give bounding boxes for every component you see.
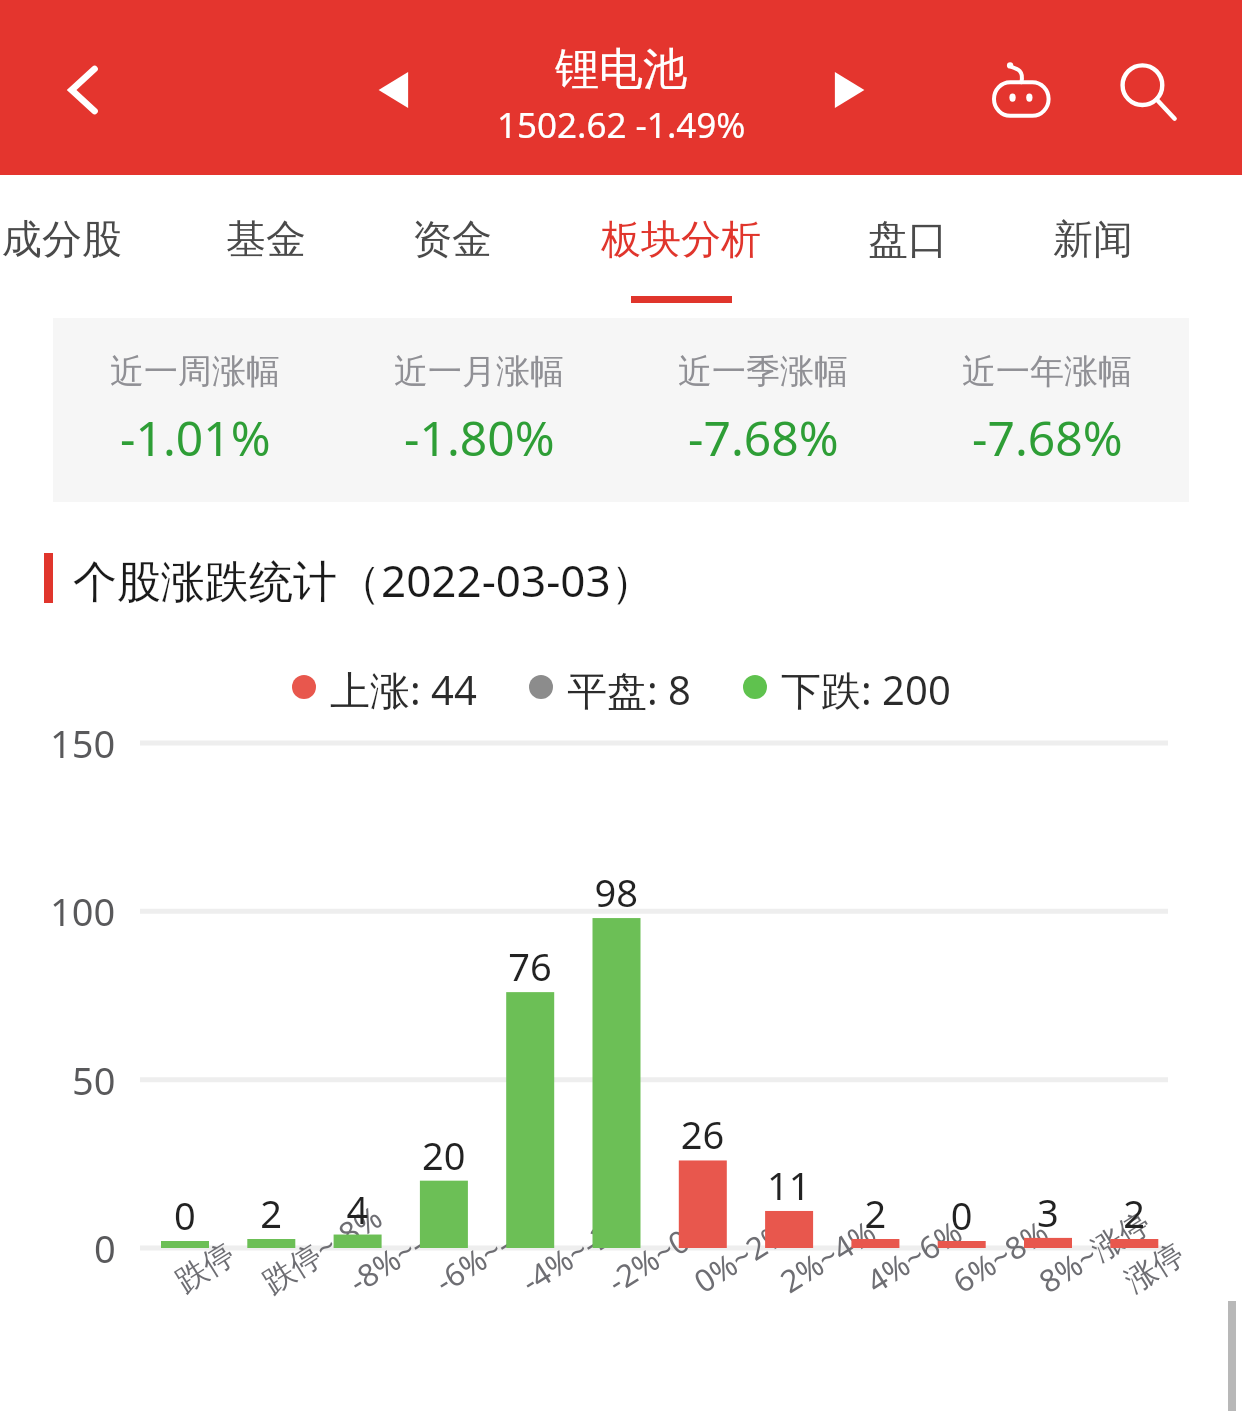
staticText: -7.68% — [972, 405, 1123, 470]
staticText: 资金 — [412, 214, 492, 264]
staticText: 下跌: 200 — [781, 662, 951, 712]
staticText: 近一季涨幅 — [678, 350, 848, 393]
staticText: 个股涨跌统计（2022-03-03） — [73, 550, 655, 606]
button[interactable]: Next sector — [812, 52, 888, 128]
button[interactable]: Assistant — [978, 48, 1066, 136]
button[interactable]: 成分股 — [0, 175, 147, 303]
staticText: 新闻 — [1053, 214, 1133, 264]
staticText: 近一周涨幅 — [110, 350, 280, 393]
button[interactable]: Previous sector — [355, 52, 431, 128]
button[interactable]: Search — [1104, 48, 1192, 136]
button[interactable]: 板块分析 — [576, 175, 786, 303]
button[interactable]: Back — [45, 50, 125, 130]
staticText: 平盘: 8 — [567, 662, 691, 712]
staticText: 成分股 — [2, 214, 122, 264]
button[interactable]: 平盘: 8 — [529, 662, 691, 712]
staticText: 近一月涨幅 — [394, 350, 564, 393]
staticText: 板块分析 — [601, 214, 761, 264]
button[interactable]: 下跌: 200 — [743, 662, 951, 712]
staticText: 盘口 — [868, 214, 948, 264]
button[interactable]: 新闻 — [1028, 175, 1158, 303]
staticText: 锂电池 — [555, 42, 687, 97]
button[interactable]: 上涨: 44 — [292, 662, 477, 712]
button[interactable]: 资金 — [387, 175, 517, 303]
button[interactable]: 近一周涨幅 — [53, 318, 1189, 502]
button[interactable]: 基金 — [201, 175, 331, 303]
staticText: -1.01% — [120, 405, 271, 470]
button[interactable]: 盘口 — [843, 175, 973, 303]
staticText: -1.80% — [404, 405, 555, 470]
staticText: 近一年涨幅 — [962, 350, 1132, 393]
staticText: 基金 — [226, 214, 306, 264]
staticText: -7.68% — [688, 405, 839, 470]
staticText: 上涨: 44 — [330, 662, 477, 712]
staticText: 1502.62 -1.49% — [497, 101, 746, 149]
